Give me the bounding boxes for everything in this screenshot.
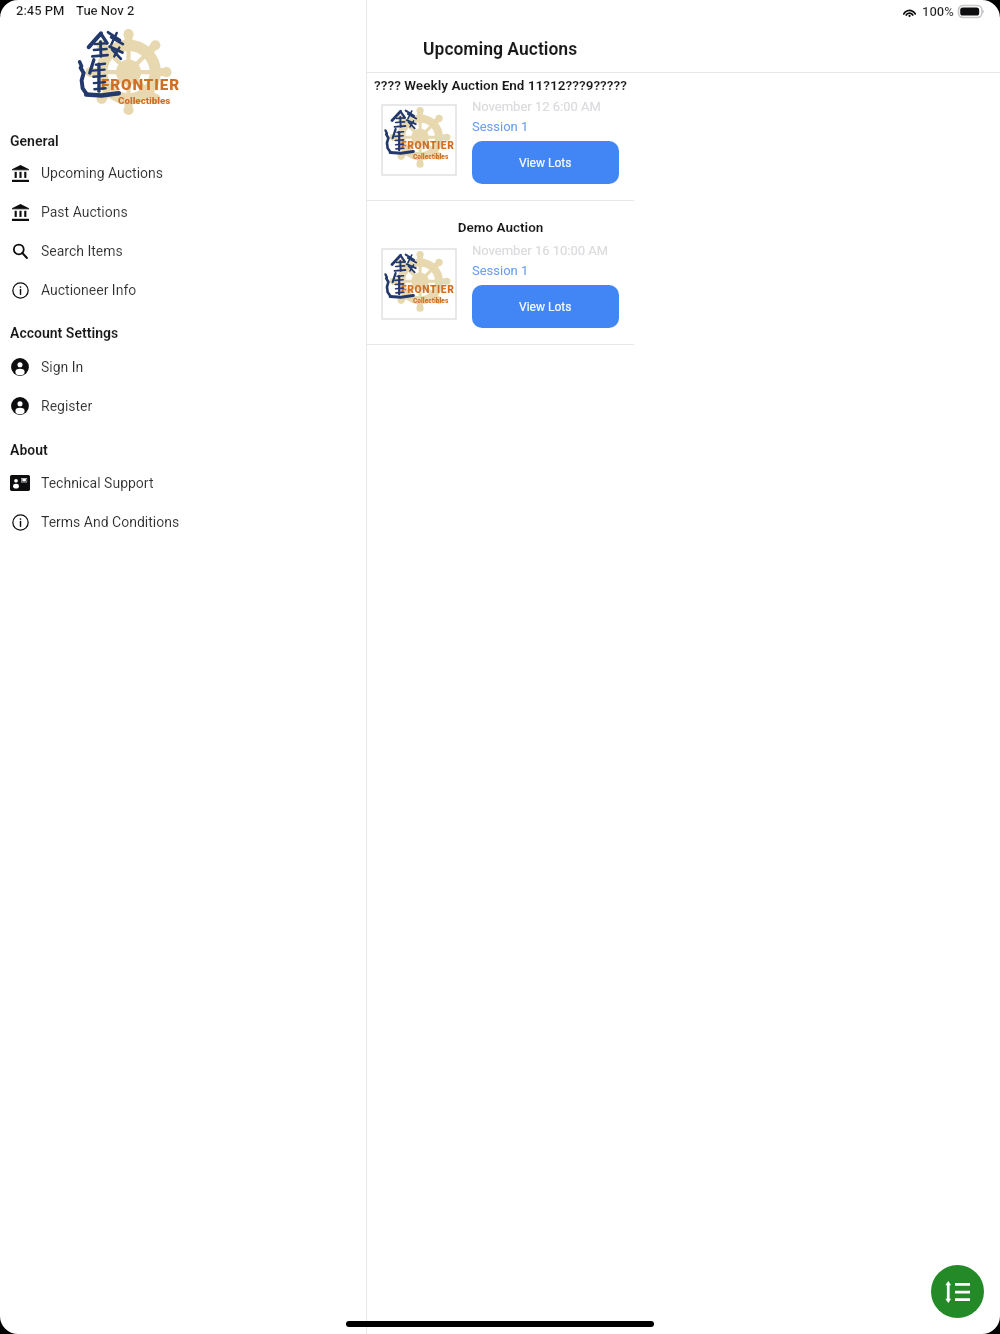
- staticText: Collectibles: [118, 95, 171, 106]
- button[interactable]: Sort auctions: [931, 1265, 984, 1318]
- button[interactable]: Search Items: [0, 231, 366, 270]
- button[interactable]: Past Auctions: [0, 192, 366, 231]
- staticText: Tue Nov 2: [76, 3, 135, 18]
- staticText: Collectibles: [413, 297, 449, 305]
- staticText: November 12 6:00 AM: [472, 99, 601, 114]
- button[interactable]: Demo Auction: [367, 201, 634, 344]
- button[interactable]: ???? Weekly Auction End 11?12???9?????: [367, 73, 634, 200]
- staticText: Auctioneer Info: [41, 282, 137, 298]
- staticText: FRONTIER: [401, 284, 455, 296]
- staticText: Collectibles: [413, 153, 449, 161]
- staticText: Account Settings: [10, 325, 119, 341]
- staticText: Past Auctions: [41, 204, 128, 220]
- staticText: About: [10, 442, 48, 458]
- staticText: Upcoming Auctions: [41, 165, 164, 181]
- staticText: View Lots: [519, 156, 572, 170]
- staticText: Session 1: [472, 263, 529, 278]
- button[interactable]: Auctioneer Info: [0, 270, 366, 309]
- button[interactable]: View Lots: [472, 285, 619, 328]
- staticText: November 16 10:00 AM: [472, 243, 609, 258]
- button[interactable]: Register: [0, 386, 366, 425]
- staticText: FRONTIER: [101, 76, 181, 94]
- staticText: Upcoming Auctions: [423, 39, 578, 60]
- staticText: ???? Weekly Auction End 11?12???9?????: [367, 77, 634, 93]
- staticText: Register: [41, 398, 93, 414]
- staticText: Sign In: [41, 359, 84, 375]
- button[interactable]: View Lots: [472, 141, 619, 184]
- staticText: View Lots: [519, 300, 572, 314]
- staticText: 2:45 PM: [16, 3, 65, 18]
- button[interactable]: Technical Support: [0, 463, 366, 502]
- button[interactable]: Upcoming Auctions: [0, 153, 366, 192]
- staticText: Demo Auction: [367, 219, 634, 235]
- button[interactable]: Terms And Conditions: [0, 502, 366, 541]
- staticText: 100%: [922, 4, 954, 19]
- staticText: General: [10, 133, 59, 149]
- staticText: Session 1: [472, 119, 529, 134]
- staticText: Terms And Conditions: [41, 514, 180, 530]
- staticText: Technical Support: [41, 475, 154, 491]
- staticText: Search Items: [41, 243, 123, 259]
- button[interactable]: Sign In: [0, 347, 366, 386]
- staticText: FRONTIER: [401, 140, 455, 152]
